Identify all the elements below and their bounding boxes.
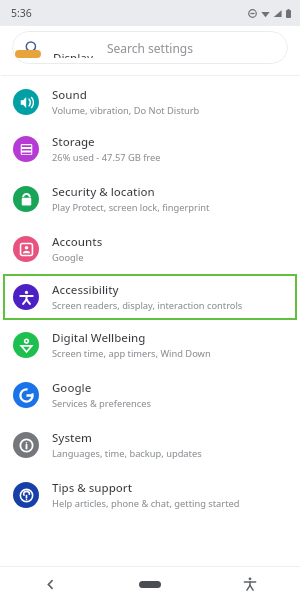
- staticText: Languages, time, backup, updates: [52, 447, 202, 460]
- staticText: Accounts: [52, 234, 103, 250]
- button[interactable]: System: [0, 420, 300, 470]
- staticText: Google: [52, 251, 84, 264]
- staticText: Display: [53, 50, 93, 58]
- staticText: Sound: [52, 87, 87, 103]
- button[interactable]: Search: [12, 31, 288, 64]
- staticText: Tips & support: [52, 480, 133, 496]
- staticText: Security & location: [52, 184, 155, 200]
- staticText: 26% used - 47.57 GB free: [52, 151, 161, 164]
- staticText: Digital Wellbeing: [52, 330, 146, 346]
- staticText: Help articles, phone & chat, getting sta…: [52, 497, 240, 510]
- button[interactable]: Home: [100, 567, 200, 601]
- button[interactable]: Tips & support: [0, 470, 300, 520]
- button[interactable]: Google: [0, 370, 300, 420]
- button[interactable]: Accounts: [0, 224, 300, 274]
- staticText: Accessibility: [52, 282, 119, 298]
- button[interactable]: Security & location: [0, 174, 300, 224]
- button[interactable]: Back: [0, 567, 100, 601]
- staticText: Volume, vibration, Do Not Disturb: [52, 104, 200, 117]
- staticText: Storage: [52, 134, 95, 150]
- button[interactable]: Accessibility: [3, 274, 297, 320]
- staticText: Play Protect, screen lock, fingerprint: [52, 201, 210, 214]
- staticText: Search settings: [107, 40, 193, 56]
- other: Search: [25, 41, 39, 55]
- button[interactable]: Sound: [0, 80, 300, 124]
- staticText: 5:36: [11, 6, 32, 20]
- staticText: System: [52, 430, 92, 446]
- button[interactable]: Digital Wellbeing: [0, 320, 300, 370]
- button[interactable]: Accessibility menu: [200, 567, 300, 601]
- staticText: Screen time, app timers, Wind Down: [52, 347, 211, 360]
- staticText: Services & preferences: [52, 397, 151, 410]
- staticText: Screen readers, display, interaction con…: [52, 299, 243, 312]
- button[interactable]: Storage: [0, 124, 300, 174]
- staticText: Google: [52, 380, 92, 396]
